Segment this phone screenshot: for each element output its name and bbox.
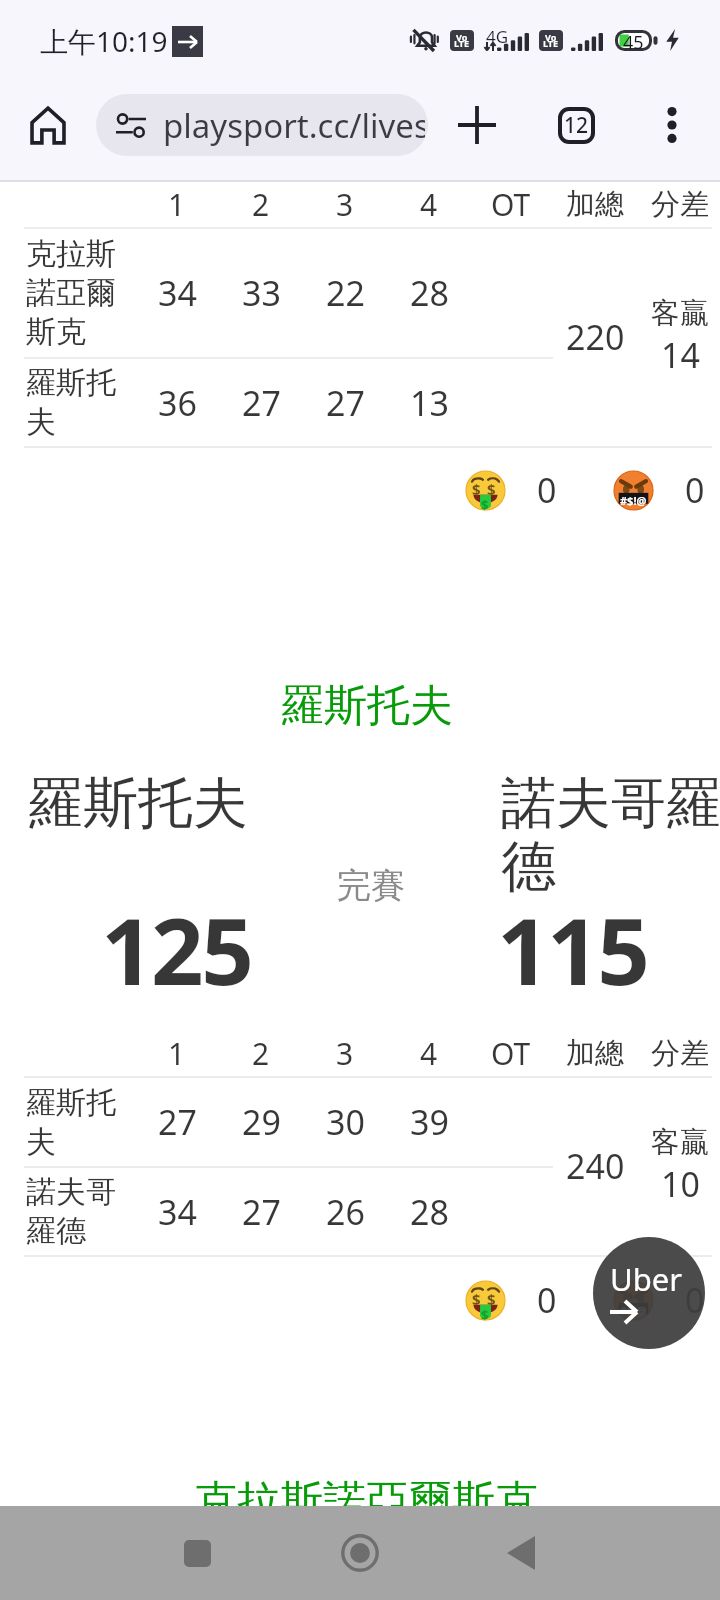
staticText: 分差	[651, 1035, 709, 1072]
staticText: 4G	[486, 25, 509, 47]
staticText: 27	[242, 380, 281, 426]
staticText: 33	[242, 270, 281, 316]
staticText: playsport.cc/lives	[163, 103, 425, 148]
staticText: 13	[410, 380, 449, 426]
staticText: 分差	[651, 186, 709, 223]
staticText: 加總	[566, 186, 624, 223]
staticText: 諾夫哥羅德	[501, 769, 720, 901]
staticText: 諾夫哥羅德	[26, 1173, 126, 1250]
staticText: 克拉斯諾亞爾斯克	[194, 1475, 538, 1529]
staticText: 0	[685, 467, 705, 513]
staticText: Vo	[545, 31, 557, 43]
staticText: 36	[158, 380, 197, 426]
staticText: 28	[410, 1189, 449, 1235]
staticText: 克拉斯諾亞爾斯克	[26, 235, 126, 351]
button[interactable]: 克拉斯諾亞爾斯克	[6, 1473, 720, 1531]
button[interactable]: 羅斯托夫	[7, 677, 720, 735]
staticText: 0	[685, 1277, 705, 1323]
staticText: 0	[537, 1277, 557, 1323]
staticText: 3	[336, 184, 354, 225]
button[interactable]: $	[462, 452, 589, 528]
button[interactable]: Recent apps	[157, 1513, 237, 1593]
staticText: 1	[168, 184, 186, 225]
staticText: 115	[497, 887, 648, 1012]
button[interactable]: Home	[320, 1513, 400, 1593]
staticText: 27	[242, 1189, 281, 1235]
button[interactable]: playsport.cc/lives	[96, 94, 428, 156]
staticText: 2	[252, 184, 270, 225]
button[interactable]: New tab	[445, 93, 509, 157]
button[interactable]: Tabs	[544, 93, 608, 157]
button[interactable]: $	[462, 1262, 589, 1338]
staticText: 10	[661, 1161, 700, 1207]
staticText: 完賽	[337, 864, 405, 907]
button[interactable]: #$!@	[610, 1262, 720, 1338]
staticText: 1	[168, 1033, 186, 1074]
staticText: 45	[623, 30, 644, 51]
staticText: LTE	[454, 37, 470, 49]
staticText: 27	[326, 380, 365, 426]
staticText: OT	[491, 184, 531, 225]
staticText: 上午10:19	[40, 22, 168, 60]
staticText: 30	[326, 1099, 365, 1145]
staticText: 39	[410, 1099, 449, 1145]
staticText: 240	[566, 1143, 625, 1189]
button[interactable]: Back	[481, 1513, 561, 1593]
staticText: Vo	[456, 31, 468, 43]
staticText: 4	[420, 184, 438, 225]
staticText: #$!@	[620, 1303, 647, 1318]
staticText: 22	[326, 270, 365, 316]
staticText: 2	[252, 1033, 270, 1074]
staticText: 220	[566, 314, 625, 360]
staticText: $	[481, 496, 489, 514]
staticText: LTE	[543, 37, 559, 49]
staticText: $	[472, 479, 481, 499]
staticText: $	[481, 1306, 489, 1324]
staticText: 羅斯托夫	[28, 769, 348, 838]
staticText: 14	[661, 332, 700, 378]
staticText: 28	[410, 270, 449, 316]
staticText: 加總	[566, 1035, 624, 1072]
staticText: #$!@	[620, 493, 647, 508]
staticText: 3	[336, 1033, 354, 1074]
staticText: Uber	[610, 1258, 683, 1300]
button[interactable]: #$!@	[610, 452, 720, 528]
staticText: 4	[420, 1033, 438, 1074]
button[interactable]: 羅斯托夫	[0, 745, 720, 1011]
staticText: $	[487, 479, 496, 499]
staticText: 12	[564, 111, 589, 140]
staticText: 羅斯托夫	[281, 679, 453, 733]
staticText: 27	[158, 1099, 197, 1145]
staticText: 29	[242, 1099, 281, 1145]
staticText: 26	[326, 1189, 365, 1235]
button[interactable]: Home	[16, 93, 80, 157]
staticText: 客贏	[651, 1124, 709, 1161]
staticText: $	[472, 1289, 481, 1309]
staticText: 0	[537, 467, 557, 513]
staticText: $	[487, 1289, 496, 1309]
staticText: 羅斯托夫	[26, 364, 126, 441]
staticText: 34	[158, 1189, 197, 1235]
staticText: 125	[101, 887, 252, 1012]
staticText: 客贏	[651, 295, 709, 332]
staticText: 羅斯托夫	[26, 1084, 126, 1161]
button[interactable]: More options	[640, 93, 704, 157]
staticText: 34	[158, 270, 197, 316]
button[interactable]: Uber	[593, 1237, 705, 1349]
staticText: OT	[491, 1033, 531, 1074]
